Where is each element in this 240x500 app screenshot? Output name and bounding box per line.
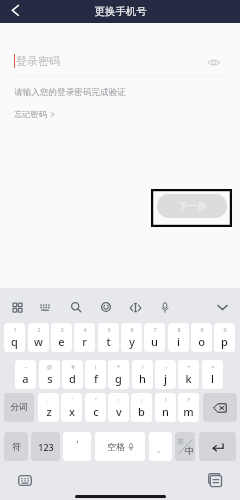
button[interactable]: Symbols: [4, 432, 28, 461]
button[interactable]: Segment: [4, 393, 34, 422]
staticText: ;: [141, 396, 143, 403]
button[interactable]: Emoji: [95, 296, 117, 318]
button[interactable]: Apostrophe: [63, 432, 91, 461]
staticText: #: [71, 363, 75, 370]
staticText: :: [118, 396, 120, 403]
staticText: 分词: [10, 402, 28, 413]
staticText: x: [69, 404, 75, 419]
staticText: r: [82, 334, 87, 349]
staticText: -: [165, 363, 167, 370]
button[interactable]: ;: [131, 393, 152, 422]
button[interactable]: 、: [38, 393, 59, 422]
staticText: 。: [157, 444, 165, 454]
staticText: p: [221, 334, 228, 349]
button[interactable]: ~: [15, 360, 36, 389]
button[interactable]: Handwriting: [34, 296, 56, 318]
button[interactable]: Clipboard: [204, 469, 226, 491]
staticText: u: [151, 334, 158, 349]
button[interactable]: Period: [149, 432, 172, 461]
staticText: 123: [38, 441, 54, 453]
button[interactable]: 9: [191, 323, 212, 352]
button[interactable]: +: [178, 360, 199, 389]
staticText: l: [211, 371, 214, 386]
button[interactable]: 4: [74, 323, 95, 352]
staticText: v: [116, 404, 122, 419]
button[interactable]: Keyboard layouts: [6, 296, 28, 318]
staticText: w: [34, 334, 43, 349]
staticText: |: [94, 363, 97, 370]
staticText: g: [115, 371, 122, 386]
button[interactable]: Voice input: [154, 296, 176, 318]
button[interactable]: Show password: [205, 53, 223, 71]
button[interactable]: @: [39, 360, 60, 389]
button[interactable]: /: [132, 360, 153, 389]
staticText: 1: [13, 326, 17, 333]
button[interactable]: |: [85, 360, 106, 389]
button[interactable]: *: [108, 360, 129, 389]
staticText: 3: [60, 326, 64, 333]
button[interactable]: Enter: [199, 432, 236, 461]
button[interactable]: 下一步: [157, 194, 227, 218]
staticText: s: [47, 371, 53, 386]
staticText: n: [162, 404, 169, 419]
staticText: 8: [177, 326, 181, 333]
staticText: b: [138, 404, 145, 419]
button[interactable]: Back: [0, 0, 30, 23]
staticText: y: [129, 334, 135, 349]
staticText: i: [177, 334, 180, 349]
staticText: 0: [223, 326, 227, 333]
button[interactable]: Backspace: [203, 393, 237, 422]
button[interactable]: 忘记密码: [14, 109, 55, 119]
button[interactable]: Numbers: [31, 432, 60, 461]
staticText: ~: [24, 363, 28, 370]
staticText: d: [69, 371, 76, 386]
staticText: j: [164, 371, 167, 386]
button[interactable]: #: [62, 360, 83, 389]
staticText: 英: [177, 437, 184, 446]
staticText: 符: [12, 441, 21, 452]
staticText: ": [94, 396, 97, 403]
staticText: 登录密码: [16, 54, 60, 68]
staticText: t: [106, 334, 111, 349]
staticText: 9: [200, 326, 204, 333]
button[interactable]: ?: [178, 393, 199, 422]
button[interactable]: !: [155, 393, 176, 422]
button[interactable]: 2: [28, 323, 49, 352]
button[interactable]: :: [108, 393, 129, 422]
button[interactable]: Search: [65, 296, 87, 318]
button[interactable]: Hide keyboard: [211, 296, 233, 318]
staticText: o: [198, 334, 205, 349]
staticText: !: [165, 396, 167, 403]
staticText: 4: [83, 326, 87, 333]
staticText: =: [211, 363, 215, 370]
button[interactable]: 6: [121, 323, 142, 352]
staticText: *: [117, 363, 120, 370]
button[interactable]: 7: [144, 323, 165, 352]
staticText: m: [183, 404, 194, 419]
staticText: /: [141, 363, 144, 370]
button[interactable]: -: [155, 360, 176, 389]
staticText: q: [11, 334, 18, 349]
staticText: 5: [107, 326, 111, 333]
staticText: ': [71, 396, 73, 403]
staticText: c: [93, 404, 99, 419]
staticText: ?: [187, 396, 190, 403]
button[interactable]: Clipboard: [124, 296, 146, 318]
button[interactable]: 3: [51, 323, 72, 352]
button[interactable]: ': [61, 393, 82, 422]
button[interactable]: Space: [95, 432, 145, 461]
staticText: 请输入您的登录密码完成验证: [14, 87, 126, 98]
button[interactable]: 8: [168, 323, 189, 352]
button[interactable]: Language: [175, 432, 195, 461]
button[interactable]: 1: [4, 323, 25, 352]
button[interactable]: 5: [98, 323, 119, 352]
staticText: 6: [130, 326, 134, 333]
staticText: ': [76, 438, 79, 450]
staticText: 空格: [107, 441, 125, 452]
button[interactable]: Keyboard: [14, 469, 36, 491]
button[interactable]: ": [85, 393, 106, 422]
button[interactable]: =: [202, 360, 223, 389]
staticText: 更换手机号: [94, 5, 147, 18]
button[interactable]: 0: [214, 323, 235, 352]
staticText: @: [47, 363, 52, 370]
